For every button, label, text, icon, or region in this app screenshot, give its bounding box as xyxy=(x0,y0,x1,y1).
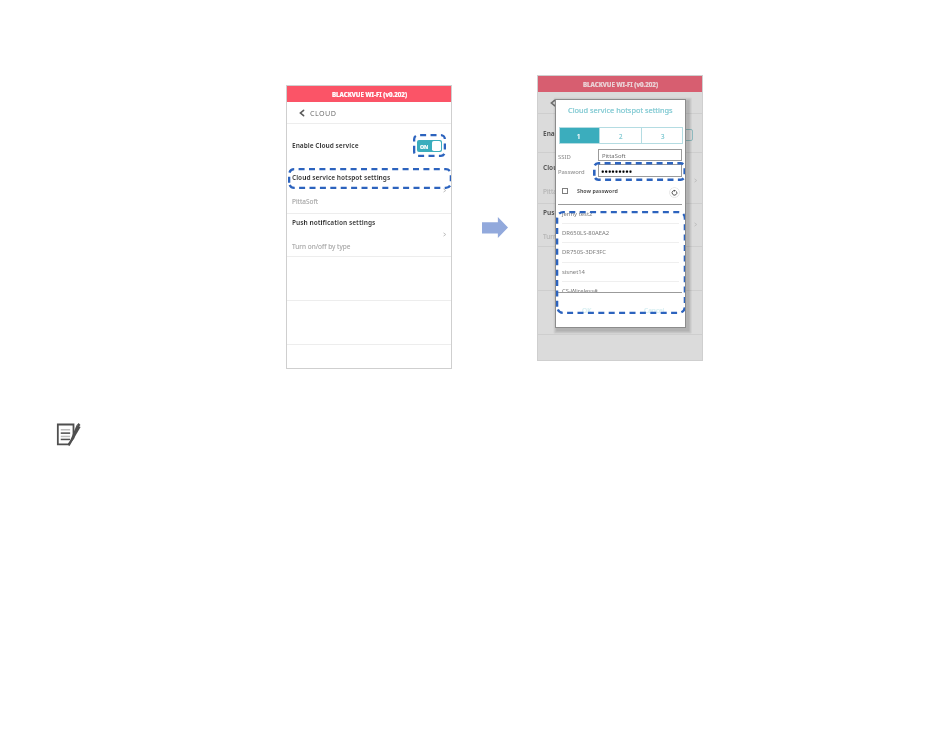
staticText: Cloud service hotspot settings xyxy=(568,105,673,115)
button[interactable]: Back to CLOUD xyxy=(286,102,452,123)
staticText: Cloud service hotspot settings xyxy=(292,173,391,182)
button[interactable]: DR650LS-80AEA2 xyxy=(558,224,682,243)
button[interactable]: ••••••••• xyxy=(598,164,682,177)
staticText: DR750S-3DF3FC xyxy=(562,248,607,256)
staticText: PittaSoft xyxy=(602,152,626,160)
button[interactable]: Cloud service hotspot settings xyxy=(286,162,452,213)
button[interactable]: DR750S-3DF3FC xyxy=(558,243,682,262)
button[interactable]: Refresh xyxy=(669,187,680,198)
staticText: jenny test2 xyxy=(562,210,593,218)
button[interactable]: 3 xyxy=(642,127,683,144)
staticText: PittaSoft xyxy=(292,197,319,206)
staticText: 2 xyxy=(619,132,623,140)
staticText: BLACKVUE WI-FI (v0.202) xyxy=(332,90,407,98)
other: Next step xyxy=(482,217,508,238)
staticText: Cancel xyxy=(644,306,665,315)
staticText: SSID xyxy=(558,153,571,161)
staticText: Enable Cloud service xyxy=(543,129,610,138)
button[interactable]: Push notification settings xyxy=(286,213,452,256)
button[interactable]: 1 xyxy=(559,127,599,144)
staticText: 3 xyxy=(661,132,665,140)
staticText: OK xyxy=(582,306,592,315)
staticText: DR650LS-80AEA2 xyxy=(562,229,610,237)
staticText: PittaSoft xyxy=(543,187,570,196)
button[interactable]: Enable Cloud service xyxy=(286,123,452,163)
staticText: Push notification settings xyxy=(543,208,627,217)
staticText: CLOUD xyxy=(310,108,337,118)
staticText: Turn on/off by type xyxy=(292,242,351,251)
staticText: Turn on/off by type xyxy=(543,232,602,241)
staticText: ON xyxy=(420,143,429,150)
staticText: Push notification settings xyxy=(292,218,376,227)
staticText: 1 xyxy=(577,132,581,140)
staticText: sisnet14 xyxy=(562,268,585,276)
button[interactable]: Show password xyxy=(562,184,636,197)
staticText: Show password xyxy=(577,187,618,194)
button[interactable]: 2 xyxy=(600,127,641,144)
staticText: CS-Wireless# xyxy=(562,287,598,295)
button[interactable]: CS-Wireless# xyxy=(558,282,682,301)
staticText: Password xyxy=(558,168,585,176)
button[interactable]: PittaSoft xyxy=(598,149,682,161)
staticText: ••••••••• xyxy=(601,165,633,178)
button[interactable]: Cancel xyxy=(629,304,679,317)
staticText: Cloud service hotspot settings xyxy=(543,163,642,172)
staticText: Enable Cloud service xyxy=(292,141,359,150)
button[interactable]: jenny test2 xyxy=(558,205,682,224)
other: Edit note xyxy=(56,423,81,446)
button[interactable]: sisnet14 xyxy=(558,263,682,282)
staticText: BLACKVUE WI-FI (v0.202) xyxy=(583,80,658,88)
button[interactable]: Enable Cloud service xyxy=(417,140,442,152)
button[interactable]: OK xyxy=(562,304,612,317)
